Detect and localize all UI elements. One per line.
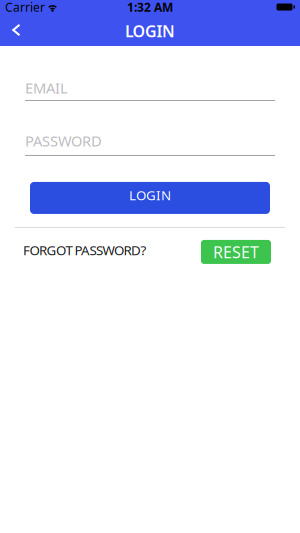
staticText: LOGIN xyxy=(129,186,171,204)
button[interactable]: LOGIN xyxy=(30,182,270,214)
staticText: 1:32 AM xyxy=(127,0,173,15)
button[interactable]: Back xyxy=(0,14,31,46)
staticText: RESET xyxy=(213,241,259,262)
button[interactable]: RESET xyxy=(201,240,271,264)
staticText: PASSWORD xyxy=(25,131,102,150)
staticText: EMAIL xyxy=(25,78,68,97)
staticText: LOGIN xyxy=(125,20,175,42)
staticText: Carrier xyxy=(5,0,45,15)
staticText: FORGOT PASSWORD? xyxy=(23,241,146,259)
